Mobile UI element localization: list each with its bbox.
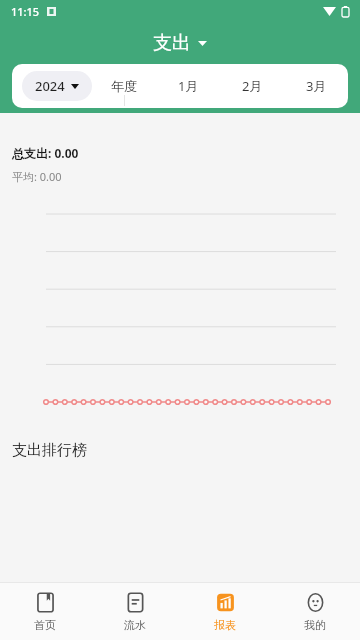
button[interactable]: 报表	[180, 583, 270, 640]
staticText: 2月	[242, 77, 263, 95]
button[interactable]: 年度	[92, 64, 156, 108]
button[interactable]: 首页	[0, 583, 90, 640]
staticText: 我的	[304, 618, 326, 632]
staticText: 年度	[111, 78, 137, 94]
staticText: 11:15	[11, 4, 40, 19]
button[interactable]: 流水	[90, 583, 180, 640]
button[interactable]: 1月	[156, 64, 220, 108]
staticText: 支出排行榜	[12, 441, 87, 460]
staticText: 3月	[306, 77, 327, 95]
staticText: 报表	[214, 618, 236, 632]
staticText: 支出	[153, 31, 191, 55]
staticText: 流水	[124, 618, 146, 632]
button[interactable]: 2月	[220, 64, 284, 108]
staticText: 总支出: 0.00	[12, 145, 79, 161]
button[interactable]: 支出	[143, 27, 217, 59]
button[interactable]: 我的	[270, 583, 360, 640]
staticText: 1月	[178, 77, 199, 95]
button[interactable]: 2024	[22, 71, 92, 101]
staticText: 首页	[34, 618, 56, 632]
button[interactable]: 3月	[284, 64, 348, 108]
staticText: 平均: 0.00	[12, 169, 62, 184]
staticText: 2024	[35, 77, 65, 95]
